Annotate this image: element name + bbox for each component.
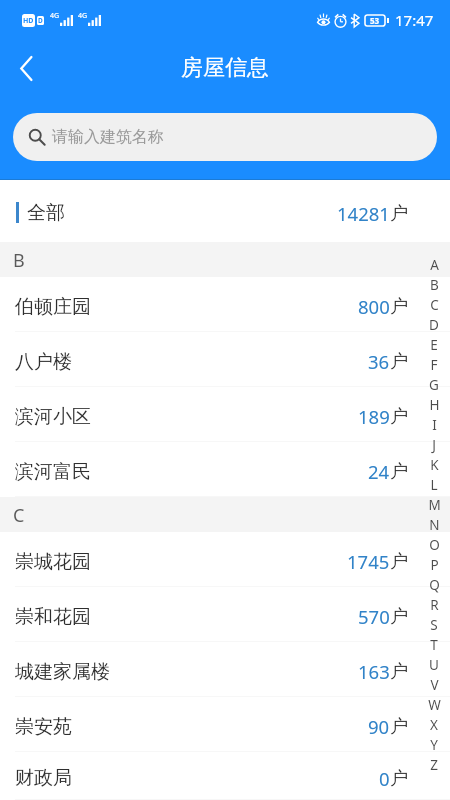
- staticText: 崇和花园: [15, 605, 91, 629]
- staticText: R: [430, 596, 439, 614]
- staticText: 请输入建筑名称: [52, 127, 164, 147]
- staticText: 崇安苑: [15, 715, 72, 739]
- staticText: L: [430, 476, 438, 494]
- staticText: K: [430, 456, 439, 474]
- button[interactable]: 崇和花园: [0, 587, 450, 642]
- button[interactable]: V: [424, 675, 444, 695]
- staticText: P: [430, 556, 439, 574]
- staticText: 房屋信息: [181, 54, 269, 82]
- button[interactable]: 请输入建筑名称: [13, 113, 437, 161]
- staticText: 户: [390, 550, 408, 573]
- button[interactable]: 伯顿庄园: [0, 277, 450, 332]
- staticText: 14281: [337, 201, 390, 226]
- staticText: 全部: [27, 201, 65, 225]
- staticText: Q: [429, 576, 440, 594]
- staticText: F: [430, 356, 438, 374]
- button[interactable]: H: [424, 395, 444, 415]
- staticText: W: [428, 696, 441, 714]
- staticText: 户: [390, 350, 408, 373]
- staticText: 53: [370, 15, 380, 26]
- staticText: 36: [368, 349, 390, 374]
- staticText: 户: [390, 715, 408, 738]
- staticText: 户: [390, 767, 408, 790]
- staticText: S: [430, 616, 438, 634]
- staticText: 0: [379, 766, 390, 791]
- button[interactable]: D: [424, 315, 444, 335]
- button[interactable]: G: [424, 375, 444, 395]
- button[interactable]: 财政局: [0, 752, 450, 800]
- staticText: 4G: [78, 11, 88, 21]
- staticText: HD: [23, 16, 34, 26]
- staticText: 800: [358, 294, 390, 319]
- button[interactable]: 滨河富民: [0, 442, 450, 497]
- staticText: X: [430, 716, 438, 734]
- staticText: 1745: [347, 549, 390, 574]
- staticText: U: [429, 656, 439, 674]
- button[interactable]: 崇安苑: [0, 697, 450, 752]
- staticText: 户: [390, 202, 408, 225]
- button[interactable]: Q: [424, 575, 444, 595]
- staticText: B: [430, 276, 439, 294]
- staticText: D: [38, 16, 43, 25]
- button[interactable]: P: [424, 555, 444, 575]
- staticText: C: [13, 503, 25, 528]
- button[interactable]: I: [424, 415, 444, 435]
- staticText: 189: [358, 404, 390, 429]
- button[interactable]: Back: [4, 46, 48, 90]
- staticText: 八户楼: [15, 350, 72, 374]
- button[interactable]: B: [424, 275, 444, 295]
- staticText: 城建家属楼: [15, 660, 110, 684]
- staticText: I: [432, 416, 437, 434]
- staticText: B: [13, 248, 25, 273]
- staticText: 4G: [50, 11, 60, 21]
- button[interactable]: Z: [424, 755, 444, 775]
- staticText: M: [428, 496, 441, 514]
- staticText: Y: [430, 736, 438, 754]
- staticText: 17:47: [395, 10, 434, 30]
- button[interactable]: A: [424, 255, 444, 275]
- staticText: 滨河富民: [15, 460, 91, 484]
- button[interactable]: E: [424, 335, 444, 355]
- button[interactable]: F: [424, 355, 444, 375]
- staticText: Z: [430, 756, 438, 774]
- staticText: 户: [390, 660, 408, 683]
- staticText: 户: [390, 405, 408, 428]
- staticText: J: [432, 436, 436, 454]
- button[interactable]: M: [424, 495, 444, 515]
- staticText: D: [429, 316, 439, 334]
- button[interactable]: 滨河小区: [0, 387, 450, 442]
- button[interactable]: C: [424, 295, 444, 315]
- button[interactable]: 崇城花园: [0, 532, 450, 587]
- button[interactable]: Y: [424, 735, 444, 755]
- button[interactable]: 城建家属楼: [0, 642, 450, 697]
- staticText: 90: [368, 714, 390, 739]
- staticText: 户: [390, 605, 408, 628]
- staticText: C: [430, 296, 439, 314]
- staticText: E: [430, 336, 438, 354]
- staticText: V: [430, 676, 439, 694]
- staticText: O: [429, 536, 440, 554]
- button[interactable]: 八户楼: [0, 332, 450, 387]
- staticText: A: [430, 256, 439, 274]
- button[interactable]: U: [424, 655, 444, 675]
- button[interactable]: T: [424, 635, 444, 655]
- button[interactable]: N: [424, 515, 444, 535]
- staticText: T: [430, 636, 438, 654]
- staticText: 24: [368, 459, 390, 484]
- staticText: 户: [390, 295, 408, 318]
- button[interactable]: R: [424, 595, 444, 615]
- button[interactable]: S: [424, 615, 444, 635]
- button[interactable]: W: [424, 695, 444, 715]
- button[interactable]: 全部: [0, 180, 450, 242]
- staticText: N: [429, 516, 440, 534]
- staticText: 570: [358, 604, 390, 629]
- button[interactable]: O: [424, 535, 444, 555]
- staticText: 滨河小区: [15, 405, 91, 429]
- button[interactable]: K: [424, 455, 444, 475]
- button[interactable]: X: [424, 715, 444, 735]
- staticText: 崇城花园: [15, 550, 91, 574]
- button[interactable]: L: [424, 475, 444, 495]
- button[interactable]: J: [424, 435, 444, 455]
- staticText: H: [429, 396, 440, 414]
- staticText: 伯顿庄园: [15, 295, 91, 319]
